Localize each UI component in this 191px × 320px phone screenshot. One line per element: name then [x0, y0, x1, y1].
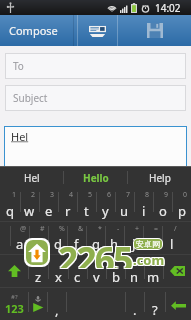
button[interactable]: 2 [20, 188, 39, 221]
staticText: 123 [5, 301, 24, 316]
button[interactable]: = [143, 222, 162, 254]
button[interactable]: Save draft [118, 15, 191, 46]
staticText: h [110, 235, 119, 253]
staticText: Compose [9, 23, 73, 38]
button[interactable]: - [105, 222, 124, 254]
button[interactable]: Send [78, 15, 117, 46]
button[interactable]: . [125, 288, 144, 320]
button[interactable]: Backspace [163, 255, 191, 287]
staticText: .com [132, 250, 164, 268]
button[interactable]: ? [144, 288, 165, 320]
staticText: 0 [183, 190, 188, 200]
staticText: Hel [24, 171, 40, 185]
button[interactable]: 8 [134, 188, 153, 221]
staticText: 2265 [58, 237, 132, 269]
button[interactable]: + [124, 222, 143, 254]
staticText: .com [133, 252, 165, 270]
button[interactable]: 4 [58, 188, 77, 221]
button[interactable]: Voice input [28, 288, 47, 320]
staticText: 9 [164, 190, 169, 200]
staticText: w [24, 202, 35, 220]
staticText: j [132, 235, 136, 253]
button[interactable]: b [106, 255, 125, 287]
button[interactable]: To [5, 53, 186, 79]
staticText: # [40, 224, 45, 234]
staticText: , [55, 301, 59, 319]
button[interactable]: 6 [96, 188, 115, 221]
staticText: 2265 [58, 235, 132, 267]
staticText: k [149, 235, 156, 253]
staticText: s [35, 235, 42, 253]
staticText: q [6, 202, 14, 220]
button[interactable]: # [29, 222, 48, 254]
staticText: 2 [31, 190, 36, 200]
staticText: 2265 [57, 236, 131, 268]
button[interactable]: m [144, 255, 163, 287]
staticText: - [117, 224, 120, 234]
staticText: Hello [83, 171, 109, 185]
staticText: 7 [126, 190, 131, 200]
button[interactable]: 7 [115, 188, 134, 221]
staticText: e [45, 202, 53, 220]
staticText: 2265 [57, 235, 131, 267]
button[interactable]: 9 [153, 188, 172, 221]
staticText: v [93, 268, 100, 286]
button[interactable]: 1 [0, 188, 20, 221]
staticText: r [65, 202, 71, 220]
staticText: .com [133, 250, 165, 268]
staticText: & [78, 224, 84, 234]
button[interactable]: @ [10, 222, 29, 254]
staticText: .com [133, 251, 165, 269]
staticText: c [74, 268, 81, 286]
staticText: f [74, 235, 79, 253]
staticText: .com [134, 250, 166, 268]
staticText: 6 [107, 190, 112, 200]
staticText: . [133, 301, 137, 319]
staticText: b [112, 268, 120, 286]
button[interactable]: z [28, 255, 48, 287]
staticText: l [170, 235, 174, 253]
staticText: Help [149, 171, 171, 185]
button[interactable]: Hel [0, 167, 63, 188]
button[interactable]: Shift [0, 255, 28, 287]
staticText: 5 [88, 190, 93, 200]
staticText: * [98, 224, 102, 234]
staticText: = [154, 224, 159, 234]
staticText: #? [11, 293, 18, 301]
staticText: + [135, 224, 140, 234]
staticText: d [54, 235, 62, 253]
staticText: x [55, 268, 62, 286]
button[interactable]: / [162, 222, 181, 254]
button[interactable]: x [48, 255, 68, 287]
button[interactable]: Hel [4, 126, 187, 170]
staticText: 安卓网 [136, 239, 160, 249]
staticText: y [102, 202, 109, 220]
staticText: p [178, 202, 186, 220]
staticText: a [16, 235, 24, 253]
button[interactable]: Hello [64, 167, 127, 188]
button[interactable]: Subject [5, 85, 186, 111]
button[interactable]: 3 [39, 188, 58, 221]
button[interactable]: Symbols [0, 288, 28, 320]
button[interactable]: 0 [172, 188, 191, 221]
button[interactable]: % [48, 222, 67, 254]
button[interactable]: c [68, 255, 87, 287]
staticText: 2265 [59, 236, 133, 268]
button[interactable]: v [87, 255, 106, 287]
button[interactable]: * [86, 222, 105, 254]
staticText: i [142, 202, 146, 220]
staticText: Hel [11, 129, 29, 144]
button[interactable]: 5 [77, 188, 96, 221]
staticText: n [130, 268, 139, 286]
staticText: 2265 [58, 236, 132, 268]
staticText: .com [134, 252, 166, 270]
staticText: o [159, 202, 167, 220]
button[interactable]: Help [128, 167, 191, 188]
button[interactable]: Enter [165, 288, 191, 320]
button[interactable]: , [47, 288, 66, 320]
button[interactable]: n [125, 255, 144, 287]
button[interactable]: & [67, 222, 86, 254]
staticText: % [59, 224, 65, 234]
staticText: 2265 [57, 237, 131, 269]
